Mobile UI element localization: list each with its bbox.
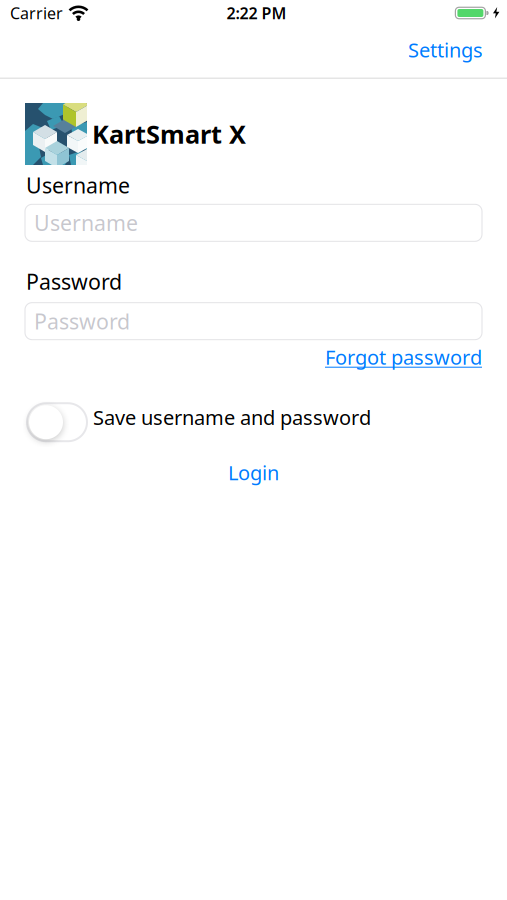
staticText: Username — [34, 209, 138, 237]
staticText: 2:22 PM — [226, 2, 286, 24]
staticText: KartSmart X — [92, 117, 246, 151]
staticText: Save username and password — [93, 404, 371, 430]
button[interactable]: Username — [25, 204, 482, 241]
staticText: Password — [26, 267, 122, 296]
button[interactable]: Forgot password — [325, 344, 482, 370]
staticText: Forgot password — [325, 344, 482, 370]
staticText: Settings — [408, 36, 483, 63]
button[interactable]: Save username and password — [27, 403, 87, 441]
button[interactable]: Password — [25, 303, 482, 340]
staticText: Password — [34, 307, 130, 335]
button[interactable]: Settings — [408, 38, 483, 65]
staticText: Carrier — [10, 2, 63, 24]
staticText: Username — [26, 171, 130, 199]
button[interactable]: Login — [228, 459, 279, 486]
staticText: Login — [228, 459, 279, 486]
